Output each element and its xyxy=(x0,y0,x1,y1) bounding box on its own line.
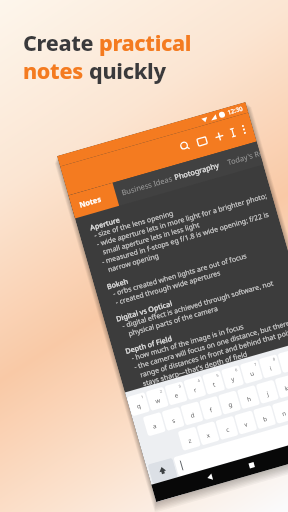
button[interactable]: Notes app screenshot xyxy=(0,0,288,512)
